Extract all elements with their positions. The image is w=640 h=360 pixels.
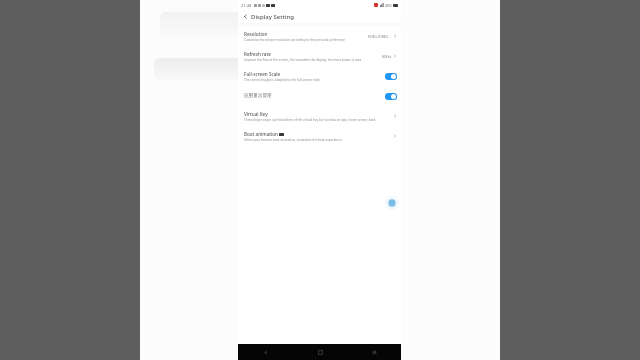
staticText: Three-finger swipe up the bottom of the … (244, 118, 376, 122)
button[interactable]: Boot animation (238, 126, 401, 146)
staticText: 21:48 (241, 3, 252, 8)
button[interactable]: 应用显示管理 (238, 86, 401, 106)
staticText: The screen display is adapted to the ful… (244, 78, 320, 82)
button[interactable]: Refresh rate (238, 46, 401, 66)
button[interactable]: Virtual Key (238, 106, 401, 126)
staticText: Boot animation (244, 131, 278, 137)
button[interactable]: Full-screen Scale (238, 66, 401, 86)
staticText: 48% (385, 3, 392, 8)
staticText: Resolution (244, 31, 268, 37)
staticText: FHD+(1080... (368, 34, 391, 39)
button[interactable]: 应用显示管理 toggle, on (385, 93, 397, 100)
button[interactable]: Recents (347, 344, 401, 360)
button[interactable]: Resolution (238, 26, 401, 46)
staticText: 应用显示管理 (244, 93, 272, 99)
staticText: 60Hz (382, 54, 391, 59)
staticText: Virtual Key (244, 111, 268, 117)
staticText: Display Setting (251, 13, 294, 21)
button[interactable]: Back (240, 11, 251, 22)
staticText: Full-screen Scale (244, 71, 281, 77)
staticText: Customize the device resolution accordin… (244, 38, 345, 42)
button[interactable]: Full-screen Scale toggle, on (385, 73, 397, 80)
button[interactable]: Accessibility assistant (385, 196, 399, 210)
staticText: Select your favorite boot animation, cus… (244, 138, 342, 142)
button[interactable]: Home (293, 344, 347, 360)
staticText: Refresh rate (244, 51, 271, 57)
staticText: Improve the flow of the screen, the smoo… (244, 58, 362, 62)
